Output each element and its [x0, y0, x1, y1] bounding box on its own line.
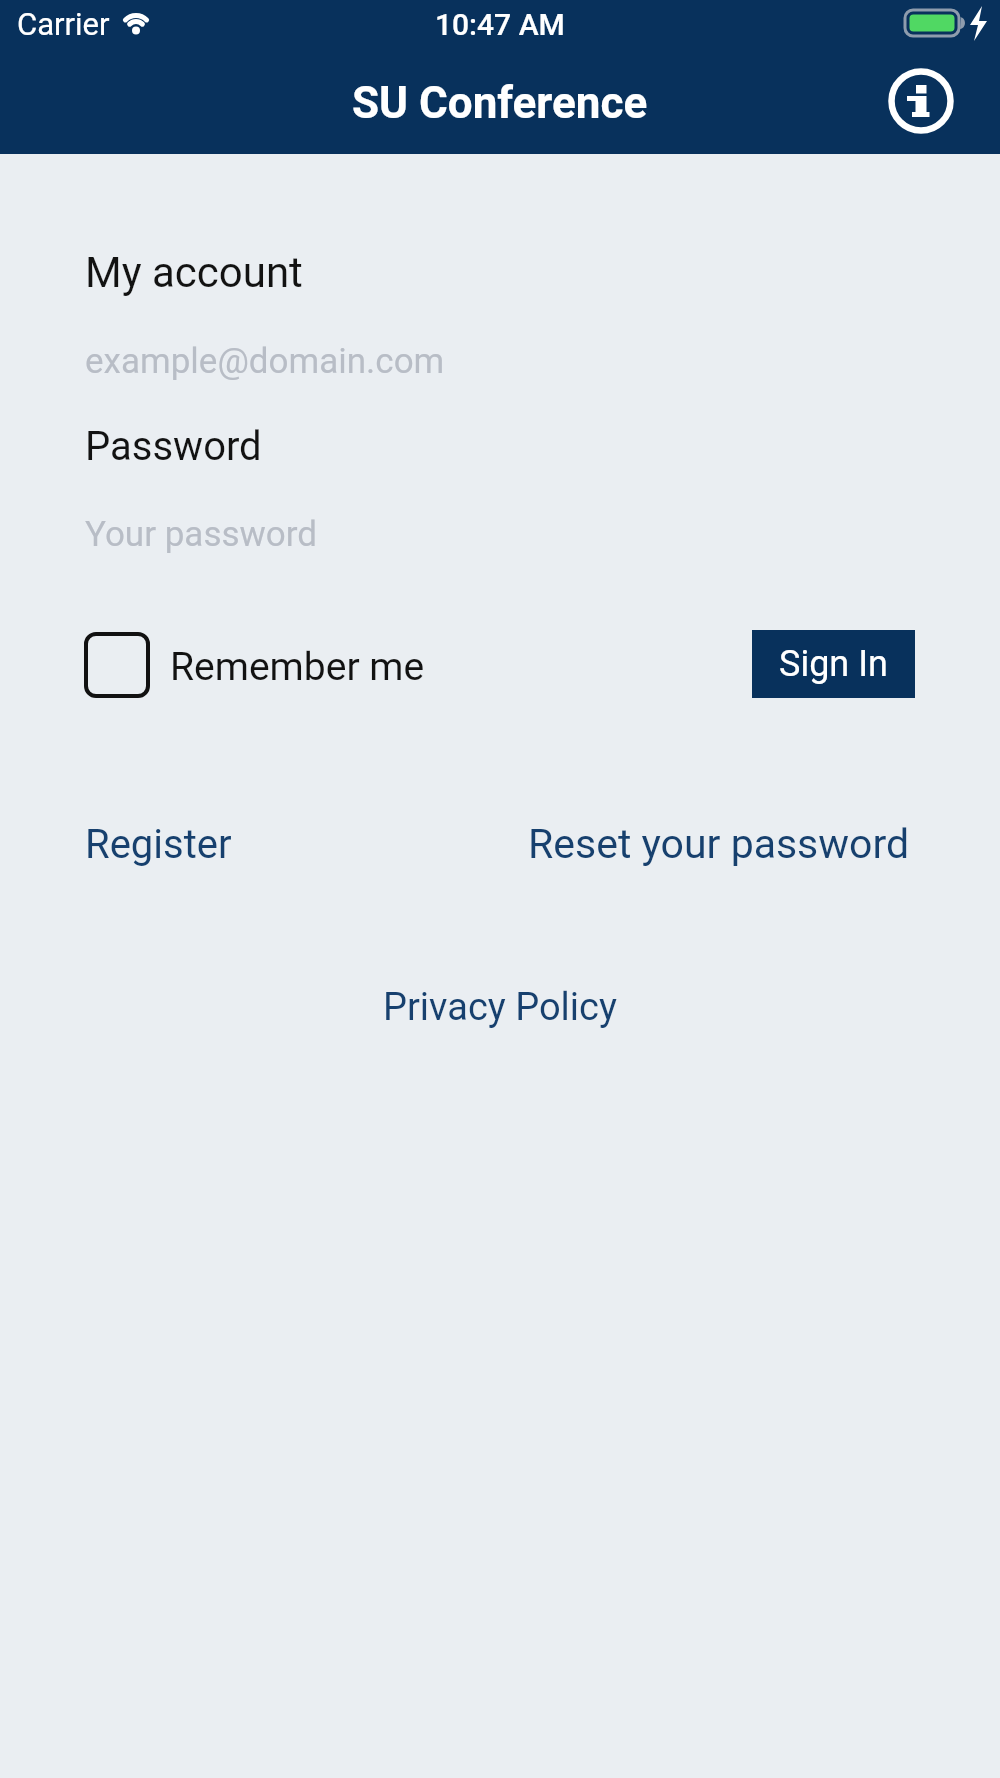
button[interactable]: Your password [85, 505, 915, 565]
staticText: Sign In [779, 643, 888, 685]
staticText: Reset your password [528, 820, 910, 868]
button[interactable]: Sign In [752, 630, 915, 698]
staticText: Your password [85, 514, 318, 555]
staticText: Privacy Policy [383, 985, 617, 1030]
staticText: Remember me [170, 644, 425, 690]
staticText: Carrier [17, 6, 110, 42]
staticText: Password [85, 423, 262, 470]
staticText: SU Conference [352, 77, 648, 129]
staticText: 10:47 AM [435, 7, 565, 42]
staticText: Register [85, 821, 232, 868]
staticText: example@domain.com [85, 341, 445, 382]
staticText: My account [85, 248, 303, 297]
button[interactable]: Reset your password [528, 820, 910, 868]
button[interactable]: example@domain.com [85, 330, 915, 390]
button[interactable] [885, 65, 957, 137]
button[interactable] [84, 632, 150, 698]
button[interactable]: Register [85, 821, 232, 868]
button[interactable]: Privacy Policy [383, 985, 617, 1030]
